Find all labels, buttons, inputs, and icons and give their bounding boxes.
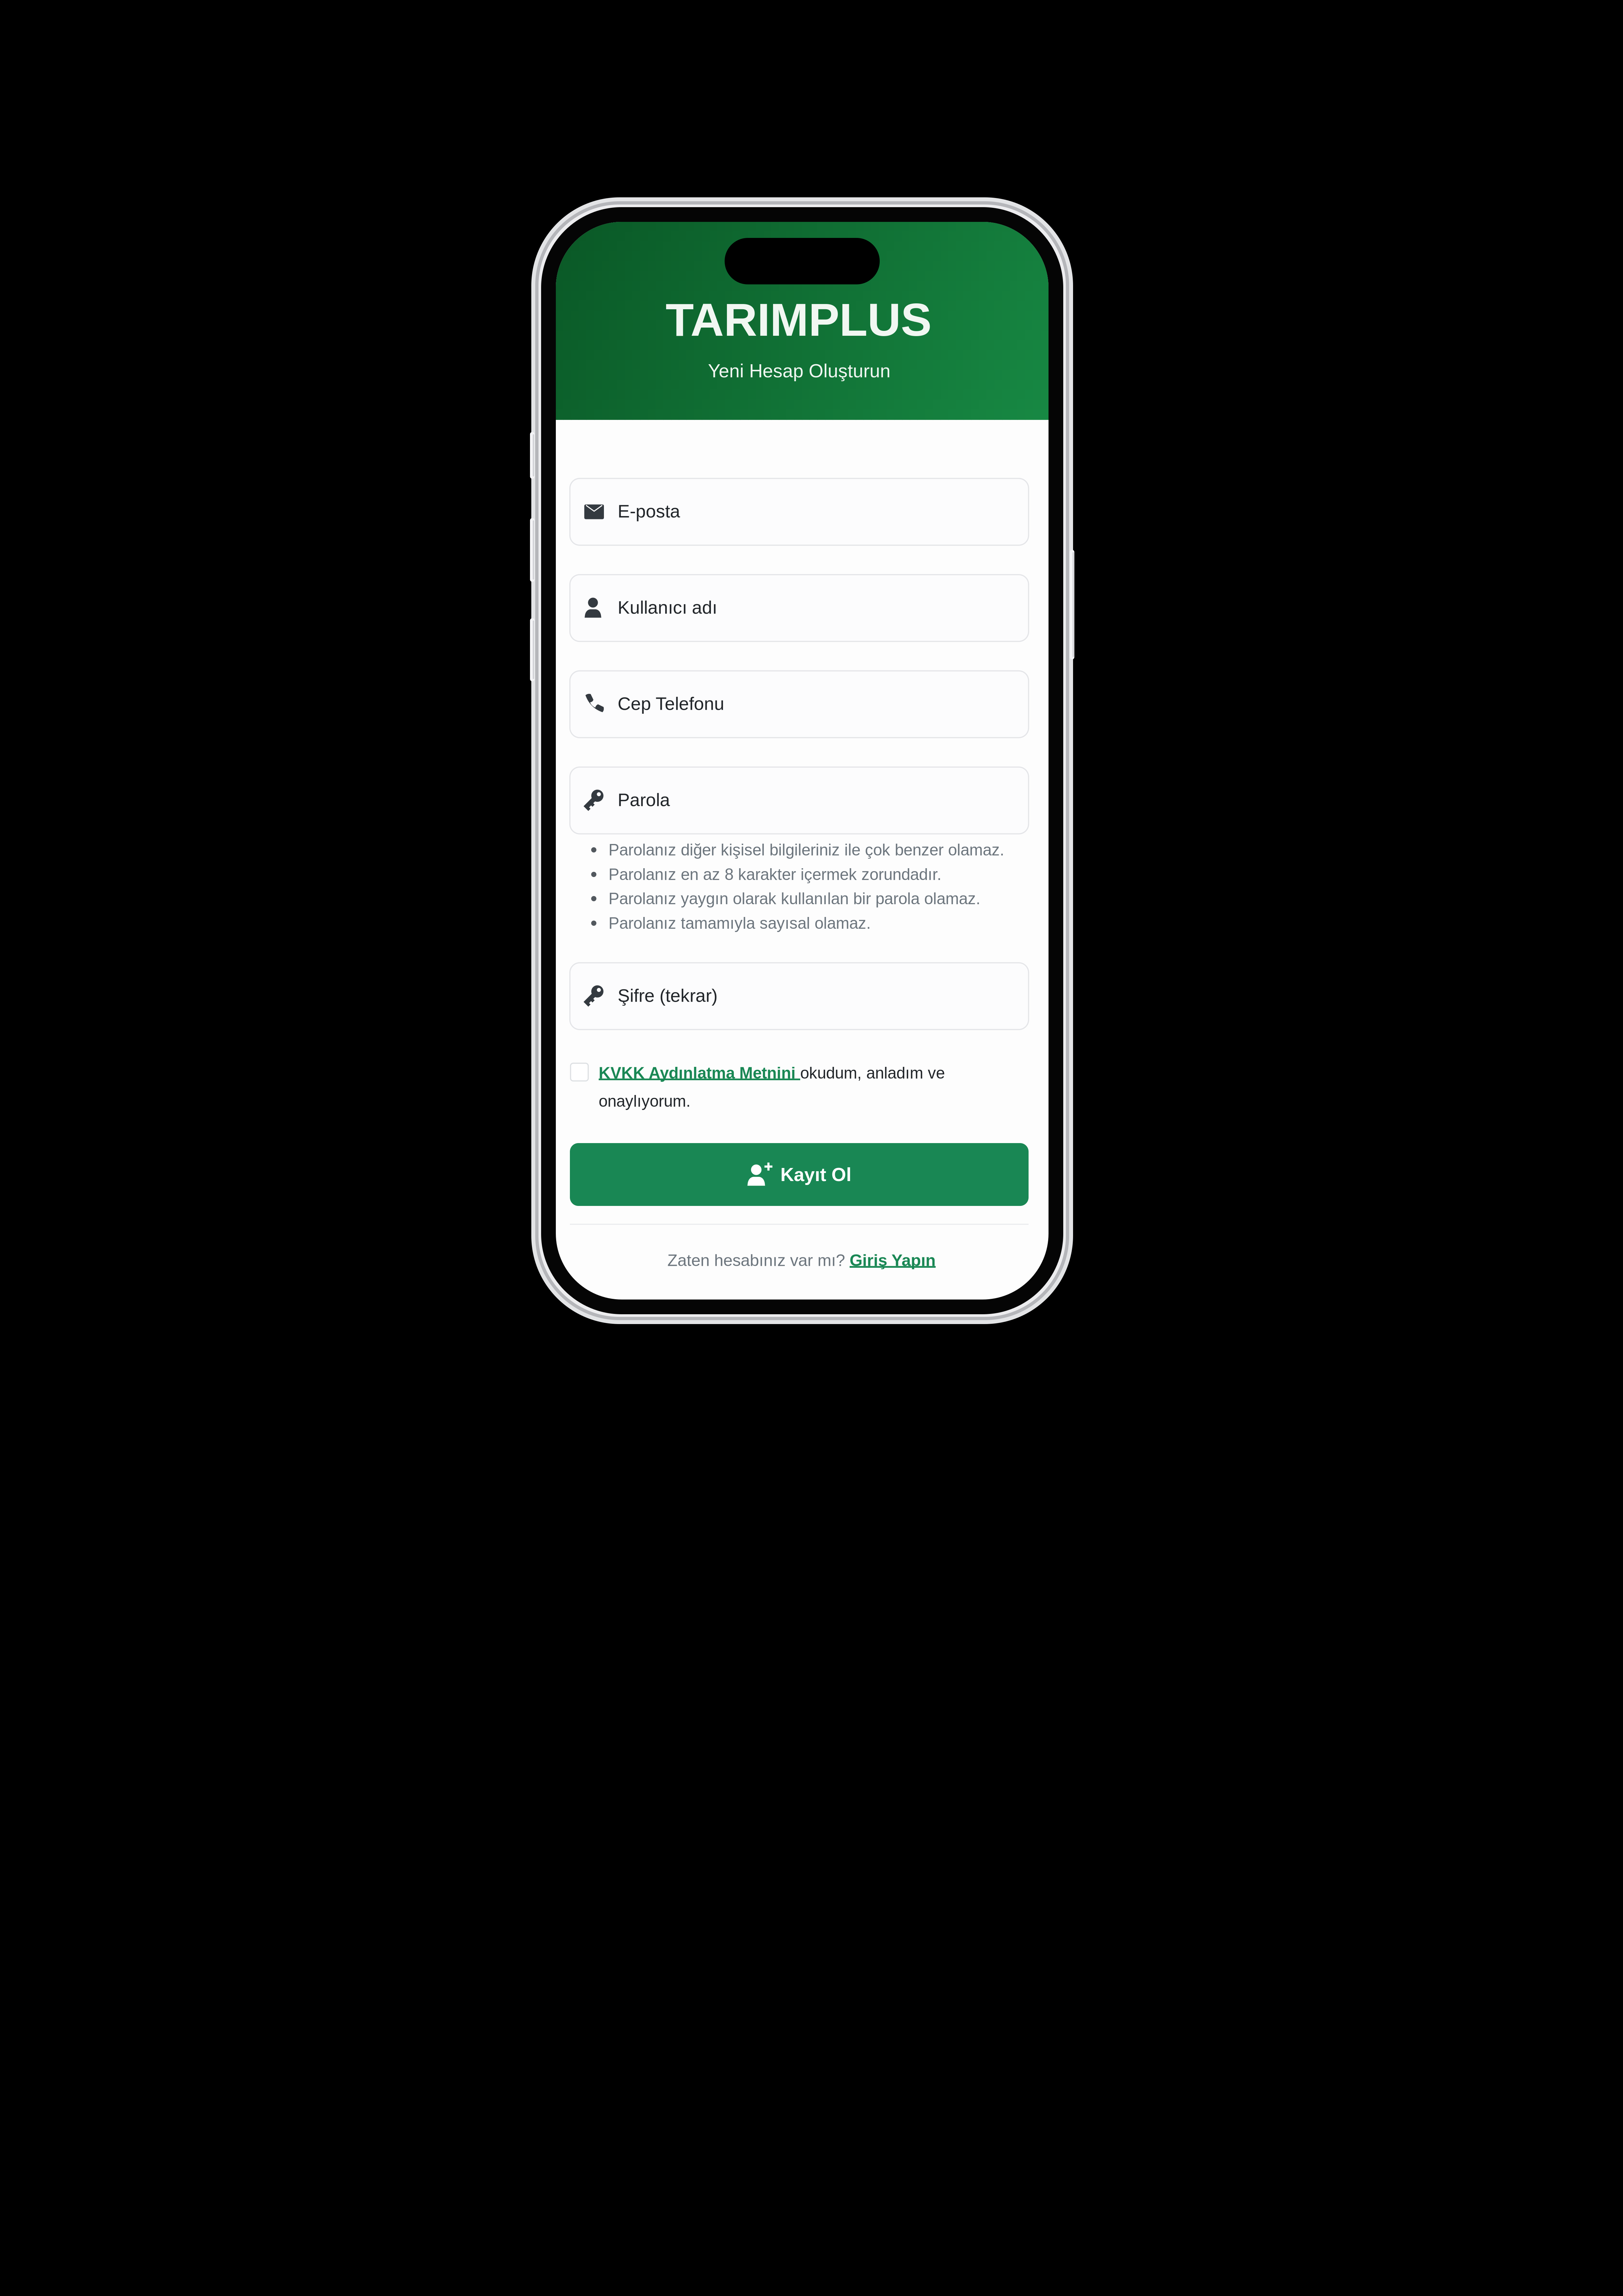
staticText: Cep Telefonu [618, 693, 724, 714]
button[interactable]: E-posta [570, 478, 1029, 545]
button[interactable]: Cep Telefonu [570, 671, 1029, 738]
button[interactable]: Şifre (tekrar) [570, 963, 1029, 1030]
staticText: Parolanız en az 8 karakter içermek zorun… [609, 865, 942, 883]
staticText: Giriş Yapın [850, 1251, 936, 1270]
staticText: TARIMPLUS [666, 294, 932, 346]
button[interactable]: Kullanıcı adı [570, 575, 1029, 641]
button[interactable]: Parola [570, 767, 1029, 834]
staticText: Şifre (tekrar) [618, 985, 717, 1006]
staticText: KVKK Aydınlatma Metnini [599, 1064, 800, 1082]
staticText: Parolanız tamamıyla sayısal olamaz. [609, 914, 871, 932]
staticText: Yeni Hesap Oluşturun [708, 360, 891, 381]
staticText: Kullanıcı adı [618, 597, 717, 617]
staticText: E-posta [618, 501, 680, 521]
staticText: okudum, anladım ve [800, 1064, 945, 1082]
staticText: Zaten hesabınız var mı? [667, 1251, 850, 1270]
button[interactable]: Giriş Yapın [850, 1251, 936, 1270]
button[interactable]: Kayıt Ol [570, 1143, 1029, 1206]
staticText: Kayıt Ol [780, 1164, 851, 1185]
staticText: Parola [618, 790, 670, 810]
staticText: Parolanız yaygın olarak kullanılan bir p… [609, 890, 980, 908]
staticText: onaylıyorum. [599, 1092, 691, 1110]
staticText: Parolanız diğer kişisel bilgileriniz ile… [609, 841, 1004, 859]
button[interactable]: KVKK Aydınlatma Metnini [570, 1061, 1029, 1107]
